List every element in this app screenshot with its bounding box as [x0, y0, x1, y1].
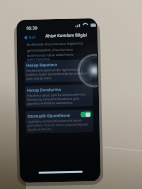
button[interactable]: Daha fazla bilgi [27, 57, 50, 62]
staticText: Otomatik Güncelleme [27, 113, 70, 119]
button[interactable]: Otomatik Güncelleme [25, 109, 94, 134]
staticText: Hesap Dondurma [27, 87, 62, 93]
staticText: Uygulama sürümünüz otomatik olarak günce… [27, 118, 92, 132]
button[interactable]: Hesap Dondurma [25, 84, 93, 108]
staticText: Hesap Kapatma [26, 62, 57, 68]
staticText: Hesabınızı kapatmak için ilgili menüyü k… [26, 67, 91, 81]
button[interactable]: Hesap Kapatma [24, 59, 93, 83]
button[interactable]: Otomatik güncelleme açık [80, 111, 91, 117]
staticText: Bu ekranda ahize kurulum bilgilerinizi g… [27, 41, 91, 58]
button[interactable]: Geri [22, 33, 39, 41]
staticText: 05:30 [26, 24, 38, 31]
staticText: Geri [28, 34, 37, 40]
staticText: Hesabınızı geçici süre ile dondurabilirs… [27, 92, 91, 106]
staticText: Ahize Kurulum Bilgisi [45, 32, 88, 38]
